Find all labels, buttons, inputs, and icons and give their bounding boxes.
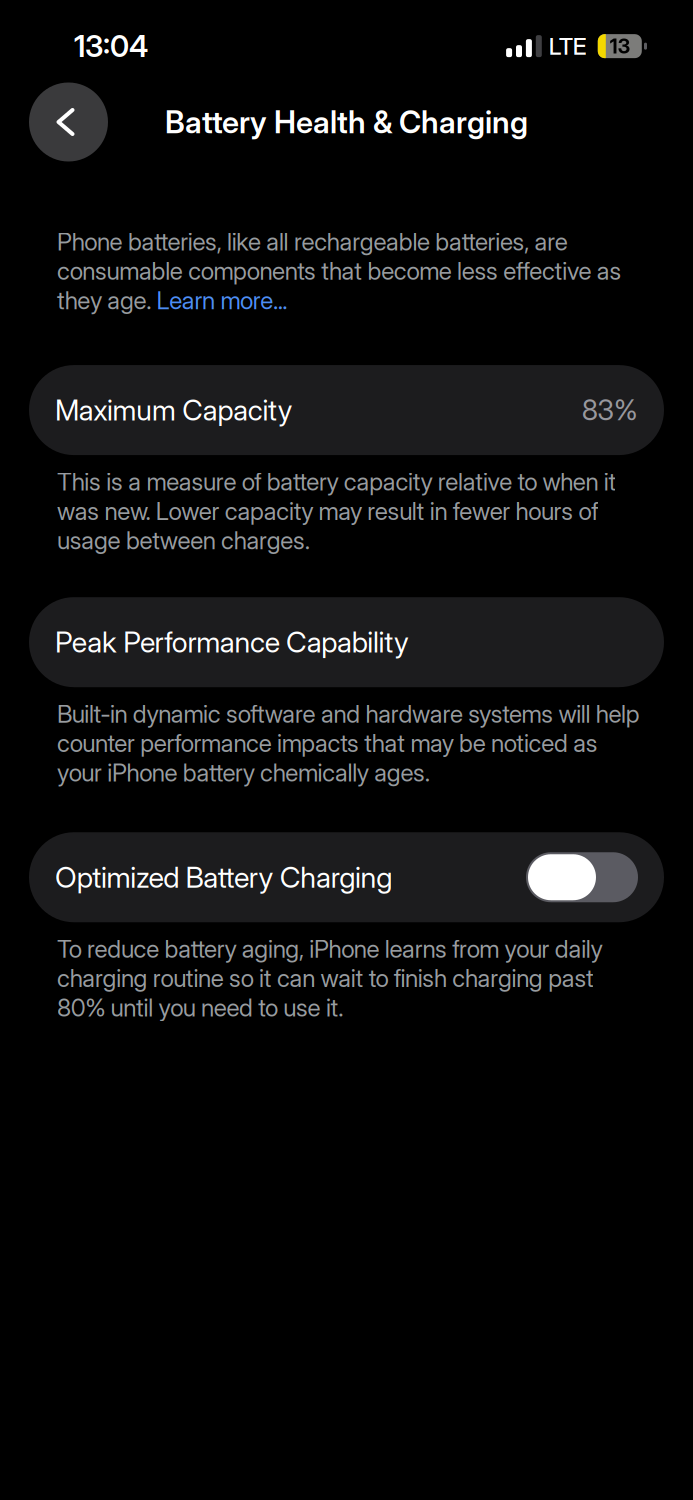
staticText: Maximum Capacity <box>55 393 293 427</box>
staticText: 13 <box>610 34 630 58</box>
staticText: Built-in dynamic software and hardware s… <box>57 699 640 787</box>
staticText: Optimized Battery Charging <box>55 860 392 895</box>
staticText: Phone batteries, like all rechargeable b… <box>57 227 621 315</box>
button[interactable]: Peak Performance Capability <box>0 597 693 687</box>
staticText: This is a measure of battery capacity re… <box>57 467 616 555</box>
button[interactable]: Maximum Capacity <box>0 365 693 455</box>
staticText: To reduce battery aging, iPhone learns f… <box>57 934 602 1022</box>
staticText: 13:04 <box>74 28 148 64</box>
staticText: Peak Performance Capability <box>55 625 409 659</box>
button[interactable]: Optimized Battery Charging <box>0 832 693 922</box>
staticText: LTE <box>549 32 587 60</box>
staticText: Battery Health & Charging <box>165 103 528 140</box>
staticText: 83% <box>582 393 638 427</box>
button[interactable]: Back <box>29 82 108 161</box>
